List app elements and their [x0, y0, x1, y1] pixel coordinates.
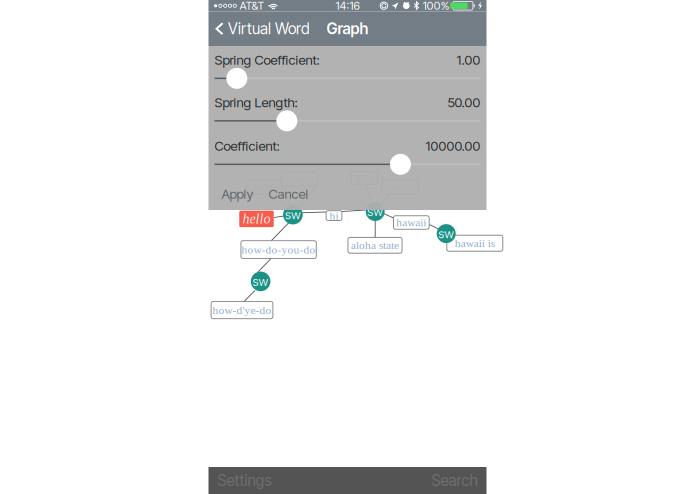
staticText: hello	[242, 211, 270, 227]
staticText: aloha state	[351, 239, 399, 251]
staticText: hawaii	[396, 216, 426, 229]
staticText: Virtual Word	[228, 19, 310, 38]
staticText: how-do-you-do	[242, 243, 316, 256]
staticText: sw	[253, 274, 269, 289]
staticText: hello	[253, 181, 276, 193]
staticText: 100%	[423, 0, 450, 13]
staticText: Apply	[221, 186, 253, 202]
staticText: 1.00	[456, 52, 480, 68]
staticText: Coefficient:	[214, 138, 279, 154]
staticText: hawaii is	[455, 237, 495, 249]
staticText: how-d'ye-do	[212, 304, 271, 316]
staticText: Spring Coefficient:	[214, 52, 319, 68]
staticText: sw	[367, 204, 383, 219]
staticText: hi	[329, 209, 338, 222]
staticText: sw	[285, 207, 301, 222]
button[interactable]: Cancel	[261, 184, 315, 204]
staticText: Graph	[326, 19, 368, 38]
staticText: 50.00	[447, 94, 480, 110]
staticText: 10000.00	[425, 138, 480, 154]
staticText: Cancel	[268, 186, 308, 202]
staticText: AT&T	[236, 0, 264, 13]
button[interactable]: Virtual Word	[208, 11, 316, 46]
staticText: Search	[431, 471, 477, 490]
staticText: Spring Length:	[214, 94, 297, 110]
button[interactable]: Search	[423, 467, 485, 494]
button[interactable]: Settings	[209, 467, 279, 494]
staticText: sw	[438, 226, 454, 241]
staticText: 14:16	[335, 0, 359, 13]
button[interactable]: Apply	[214, 184, 260, 204]
staticText: Settings	[217, 471, 271, 490]
